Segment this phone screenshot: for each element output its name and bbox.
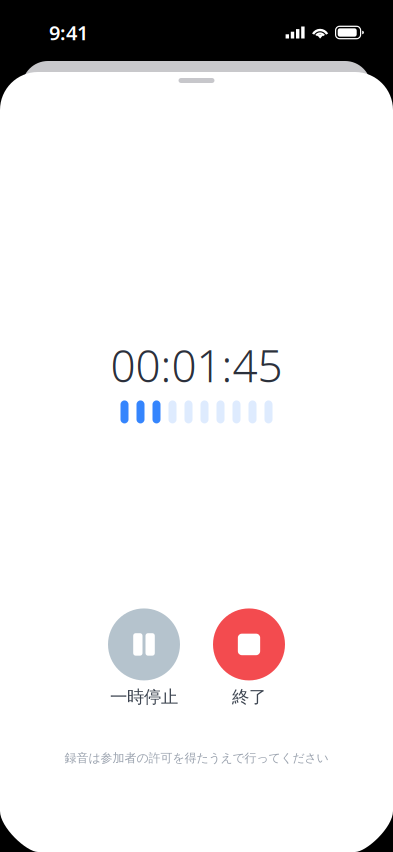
staticText: 一時停止	[110, 686, 178, 708]
staticText: 終了	[232, 686, 266, 708]
staticText: 録音は参加者の許可を得たうえで行ってください	[64, 751, 328, 765]
button[interactable]: 一時停止	[108, 608, 180, 708]
staticText: 9:41	[49, 19, 88, 46]
button[interactable]: 終了	[213, 608, 285, 708]
staticText: 00:01:45	[110, 336, 282, 394]
